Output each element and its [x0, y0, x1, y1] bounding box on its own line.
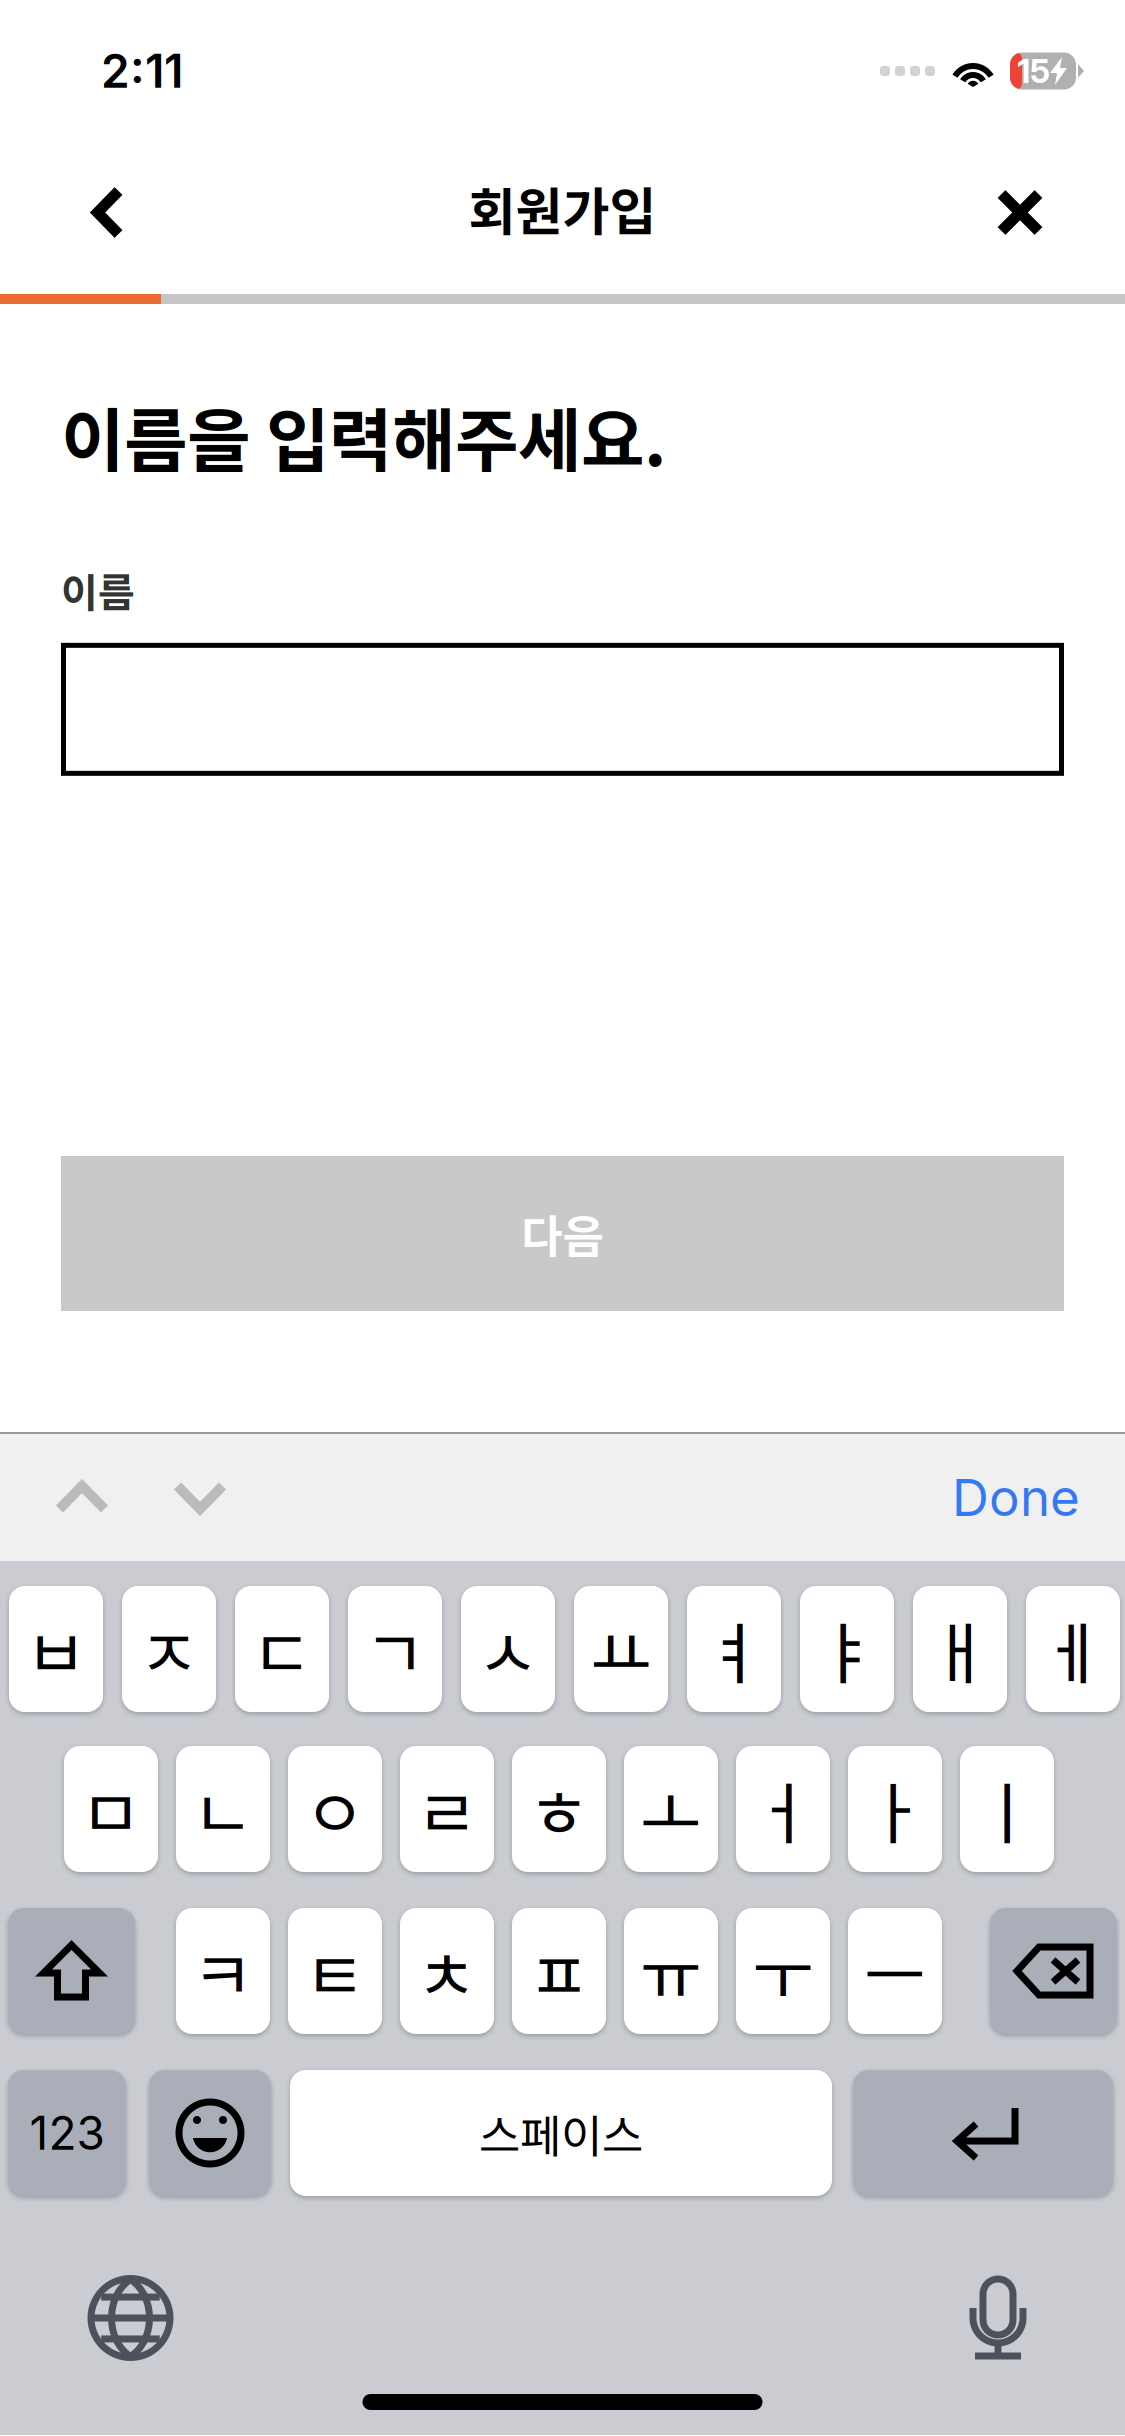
button[interactable]: 123 [8, 2070, 126, 2196]
staticText: ㅜ [752, 1922, 814, 2019]
staticText: ㅔ [1042, 1600, 1104, 1697]
button[interactable]: Done [952, 1467, 1080, 1528]
button[interactable]: Dictation [970, 2276, 1026, 2360]
staticText: ㅎ [528, 1760, 590, 1857]
button[interactable]: ㅛ [574, 1586, 668, 1712]
staticText: ㅁ [80, 1760, 142, 1857]
button[interactable]: ㄱ [348, 1586, 442, 1712]
button[interactable]: ㅓ [736, 1746, 830, 1872]
button[interactable]: ㅇ [288, 1746, 382, 1872]
button[interactable]: ㅁ [64, 1746, 158, 1872]
button[interactable]: Back [48, 152, 168, 282]
button[interactable]: ㄷ [235, 1586, 329, 1712]
staticText: ㅅ [477, 1600, 539, 1697]
staticText: ㅂ [25, 1600, 87, 1697]
staticText: ㅠ [640, 1922, 702, 2019]
staticText: 스페이스 [479, 2100, 643, 2166]
button[interactable]: ㅍ [512, 1908, 606, 2034]
button[interactable]: Next field [141, 1438, 259, 1556]
staticText: 회원가입 [468, 171, 656, 245]
button[interactable]: 다음 [61, 1156, 1064, 1311]
staticText: ㅓ [752, 1760, 814, 1857]
button[interactable]: ㅣ [960, 1746, 1054, 1872]
staticText: 2:11 [101, 43, 183, 99]
button[interactable]: Change keyboard [91, 2278, 170, 2357]
button[interactable]: Return [853, 2070, 1113, 2196]
button[interactable]: ㅕ [687, 1586, 781, 1712]
staticText: 이름을 입력해주세요. [61, 386, 666, 486]
staticText: 123 [29, 2105, 104, 2161]
button[interactable]: ㅈ [122, 1586, 216, 1712]
staticText: ㅏ [864, 1760, 926, 1857]
staticText: ㅌ [304, 1922, 366, 2019]
staticText: ㅗ [640, 1760, 702, 1857]
button[interactable]: ㅌ [288, 1908, 382, 2034]
button[interactable]: ㅏ [848, 1746, 942, 1872]
staticText: ㄱ [364, 1600, 426, 1697]
button[interactable]: Emoji [149, 2070, 271, 2196]
button[interactable]: 스페이스 [290, 2070, 832, 2196]
staticText: 이름 [61, 561, 135, 619]
button[interactable]: ㅊ [400, 1908, 494, 2034]
button[interactable]: Delete [990, 1908, 1117, 2034]
staticText: 15 [1017, 51, 1050, 91]
staticText: ㅊ [416, 1922, 478, 2019]
staticText: 다음 [521, 1201, 603, 1266]
button[interactable]: ㅠ [624, 1908, 718, 2034]
staticText: ㅕ [703, 1600, 765, 1697]
button[interactable]: ㅐ [913, 1586, 1007, 1712]
staticText: ㅍ [528, 1922, 590, 2019]
button[interactable]: Close [960, 152, 1080, 282]
button[interactable]: ㅋ [176, 1908, 270, 2034]
button[interactable]: ㄹ [400, 1746, 494, 1872]
button[interactable]: Previous field [23, 1438, 141, 1556]
button[interactable]: ㅔ [1026, 1586, 1120, 1712]
button[interactable]: ㅅ [461, 1586, 555, 1712]
staticText: ㅇ [304, 1760, 366, 1857]
staticText: ㄹ [416, 1760, 478, 1857]
button[interactable]: ㄴ [176, 1746, 270, 1872]
staticText: ㅈ [138, 1600, 200, 1697]
staticText: ㅑ [816, 1600, 878, 1697]
staticText: ㅣ [976, 1760, 1038, 1857]
staticText: ㅐ [929, 1600, 991, 1697]
staticText: Done [952, 1467, 1080, 1528]
staticText: ㅛ [590, 1600, 652, 1697]
staticText: ㄷ [251, 1600, 313, 1697]
button[interactable]: ㅎ [512, 1746, 606, 1872]
staticText: ㄴ [192, 1760, 254, 1857]
button[interactable]: ㅂ [9, 1586, 103, 1712]
staticText: ㅡ [864, 1922, 926, 2019]
button[interactable]: Shift [8, 1908, 135, 2034]
button[interactable]: ㅑ [800, 1586, 894, 1712]
button[interactable]: ㅡ [848, 1908, 942, 2034]
button[interactable]: ㅜ [736, 1908, 830, 2034]
staticText: ㅋ [192, 1922, 254, 2019]
button[interactable]: ㅗ [624, 1746, 718, 1872]
